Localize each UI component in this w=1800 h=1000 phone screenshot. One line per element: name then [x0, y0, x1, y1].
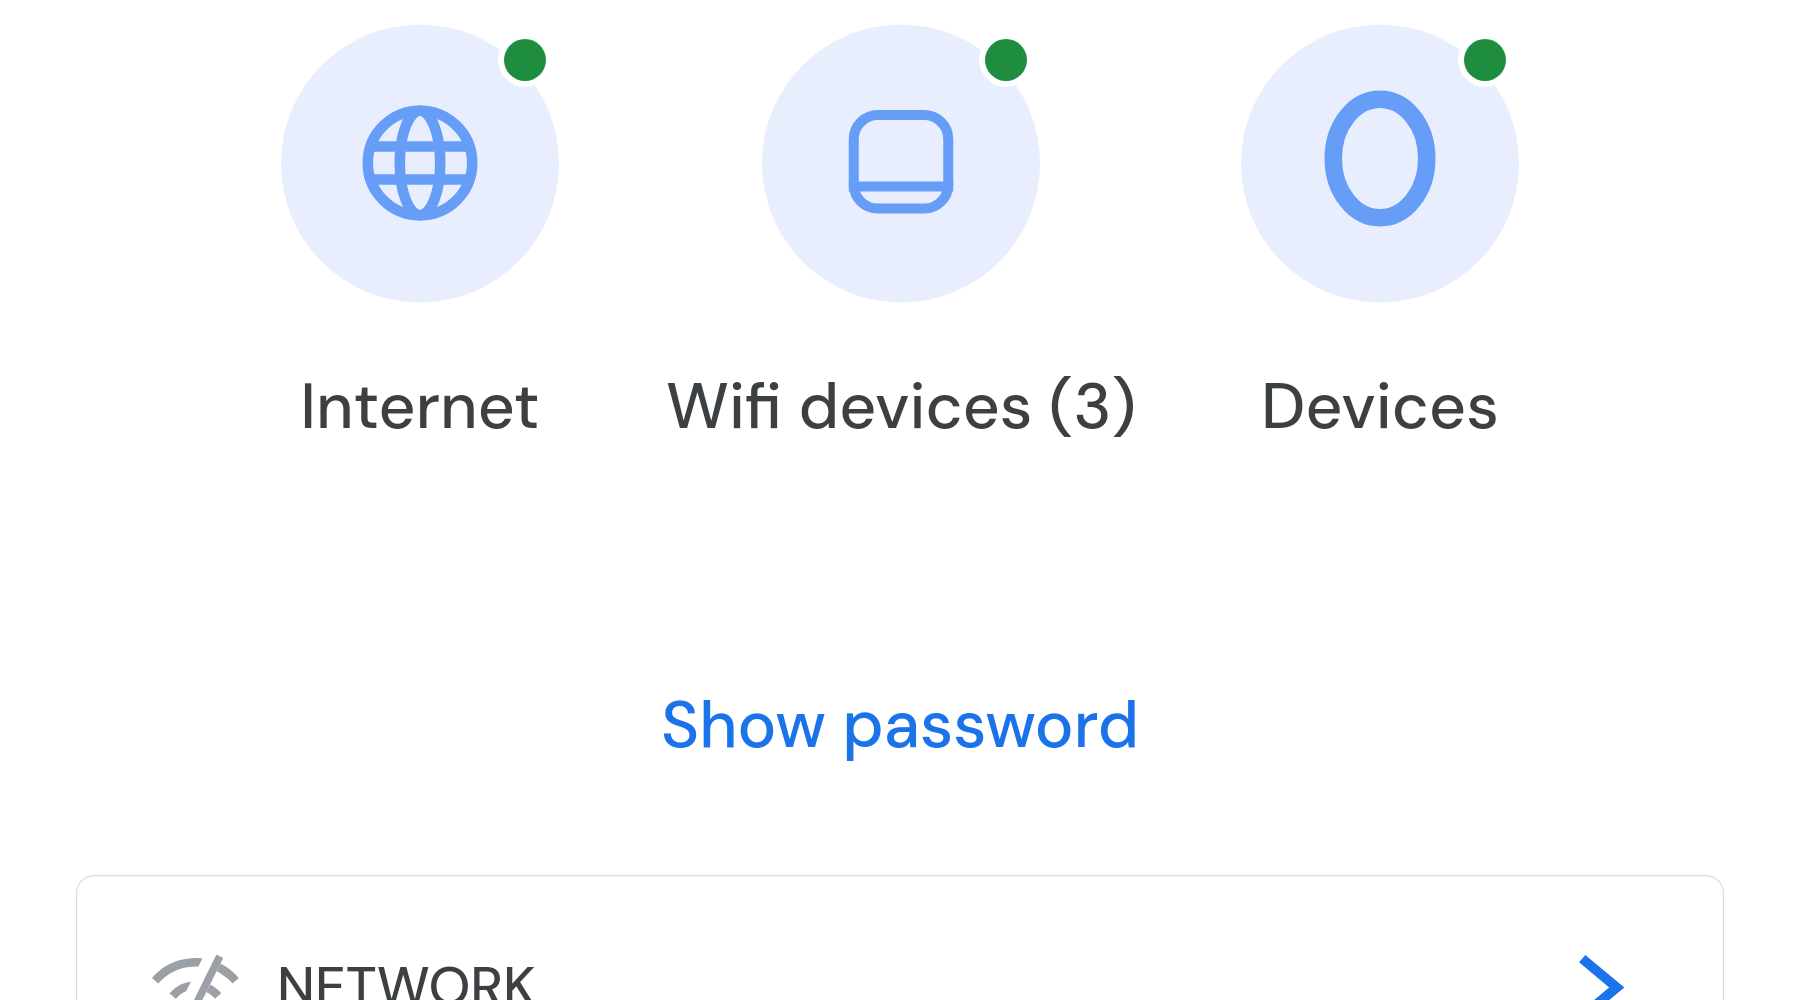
staticText: Show password: [661, 683, 1139, 768]
button[interactable]: NETWORK: [76, 875, 1724, 1000]
button[interactable]: Show password: [610, 666, 1190, 784]
other: Open network details: [1538, 931, 1648, 1000]
button[interactable]: Internet: [185, 0, 655, 450]
staticText: Internet: [185, 365, 655, 448]
staticText: Devices: [1145, 365, 1615, 448]
button[interactable]: Wifi devices (3): [666, 0, 1136, 450]
staticText: Wifi devices (3): [666, 365, 1136, 448]
button[interactable]: Devices: [1145, 0, 1615, 450]
staticText: NETWORK: [277, 951, 536, 1000]
